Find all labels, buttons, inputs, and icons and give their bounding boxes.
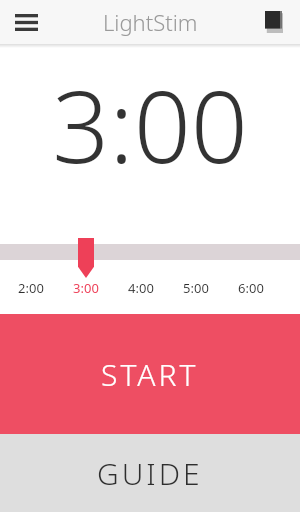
button[interactable]: Guide book: [256, 4, 292, 40]
button[interactable]: GUIDE: [0, 434, 300, 512]
staticText: 5:00: [183, 279, 209, 297]
staticText: GUIDE: [97, 453, 203, 494]
staticText: 3:00: [73, 279, 99, 297]
staticText: LightStim: [103, 7, 198, 37]
staticText: START: [101, 354, 199, 395]
button[interactable]: 2:00: [0, 200, 300, 314]
staticText: 3:00: [52, 56, 248, 192]
button[interactable]: START: [0, 314, 300, 434]
staticText: 4:00: [128, 279, 154, 297]
staticText: 2:00: [18, 279, 44, 297]
button[interactable]: Menu: [8, 4, 44, 40]
staticText: 6:00: [238, 279, 264, 297]
